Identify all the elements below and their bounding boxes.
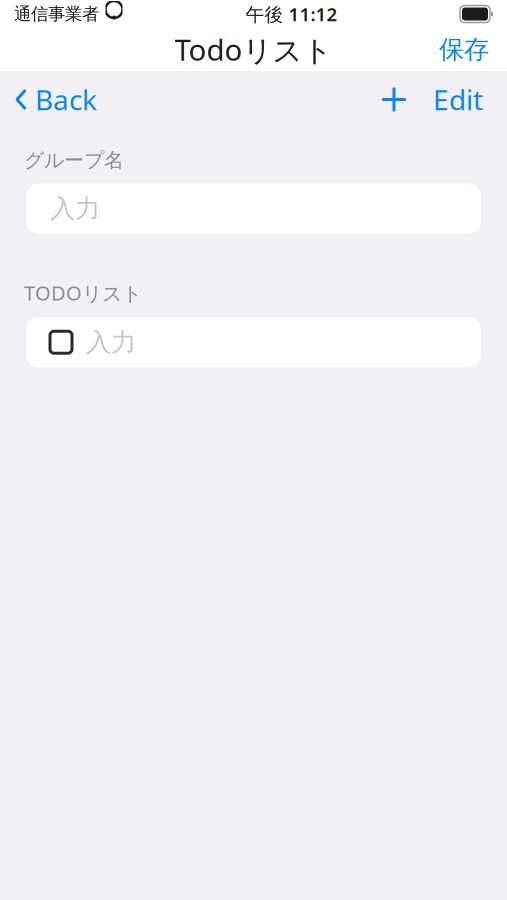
- staticText: グループ名: [24, 148, 124, 173]
- staticText: 入力: [50, 193, 100, 224]
- button[interactable]: 入力: [26, 184, 481, 234]
- staticText: 保存: [439, 34, 489, 65]
- staticText: 入力: [86, 327, 136, 358]
- button[interactable]: 保存: [427, 28, 501, 71]
- button[interactable]: 入力: [26, 317, 481, 367]
- staticText: Back: [35, 81, 97, 118]
- button[interactable]: Edit: [419, 74, 497, 125]
- button[interactable]: Back: [0, 74, 111, 125]
- staticText: Edit: [433, 81, 483, 118]
- staticText: Todoリスト: [174, 30, 332, 69]
- staticText: 通信事業者: [14, 3, 99, 25]
- staticText: 午後 11:12: [245, 2, 337, 26]
- staticText: TODOリスト: [24, 280, 142, 306]
- button[interactable]: Add item: [369, 79, 419, 119]
